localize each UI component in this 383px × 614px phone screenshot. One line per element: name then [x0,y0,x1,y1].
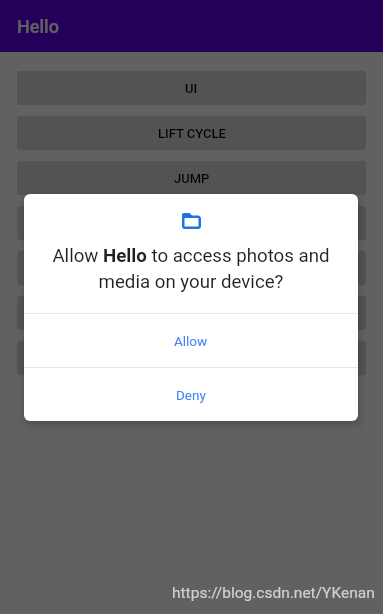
staticText: Deny [176,387,206,403]
staticText: Allow Hello to access photos and media o… [44,245,338,292]
staticText: RECYCLER VIEW [143,261,240,276]
button[interactable]: ANIMATION [17,206,366,240]
staticText: LIFT CYCLE [158,126,226,141]
button[interactable]: Deny [24,368,358,421]
button[interactable]: RECYCLER VIEW [17,251,366,285]
button[interactable]: UI [17,71,366,105]
button[interactable]: LIFT CYCLE [17,116,366,150]
button[interactable]: Dismiss permission dialog [0,0,383,614]
staticText: Allow [174,333,208,349]
staticText: https://blog.csdn.net/YKenan [172,584,375,602]
button[interactable]: JUMP [17,161,366,195]
staticText: UI [185,81,198,96]
staticText: Hello [17,16,59,37]
staticText: JUMP [174,171,210,186]
staticText: DATA BASE [158,306,226,321]
button[interactable]: Allow [24,314,358,367]
button[interactable]: NETWORK [17,341,366,375]
staticText: ANIMATION [156,216,227,231]
button[interactable]: DATA BASE [17,296,366,330]
